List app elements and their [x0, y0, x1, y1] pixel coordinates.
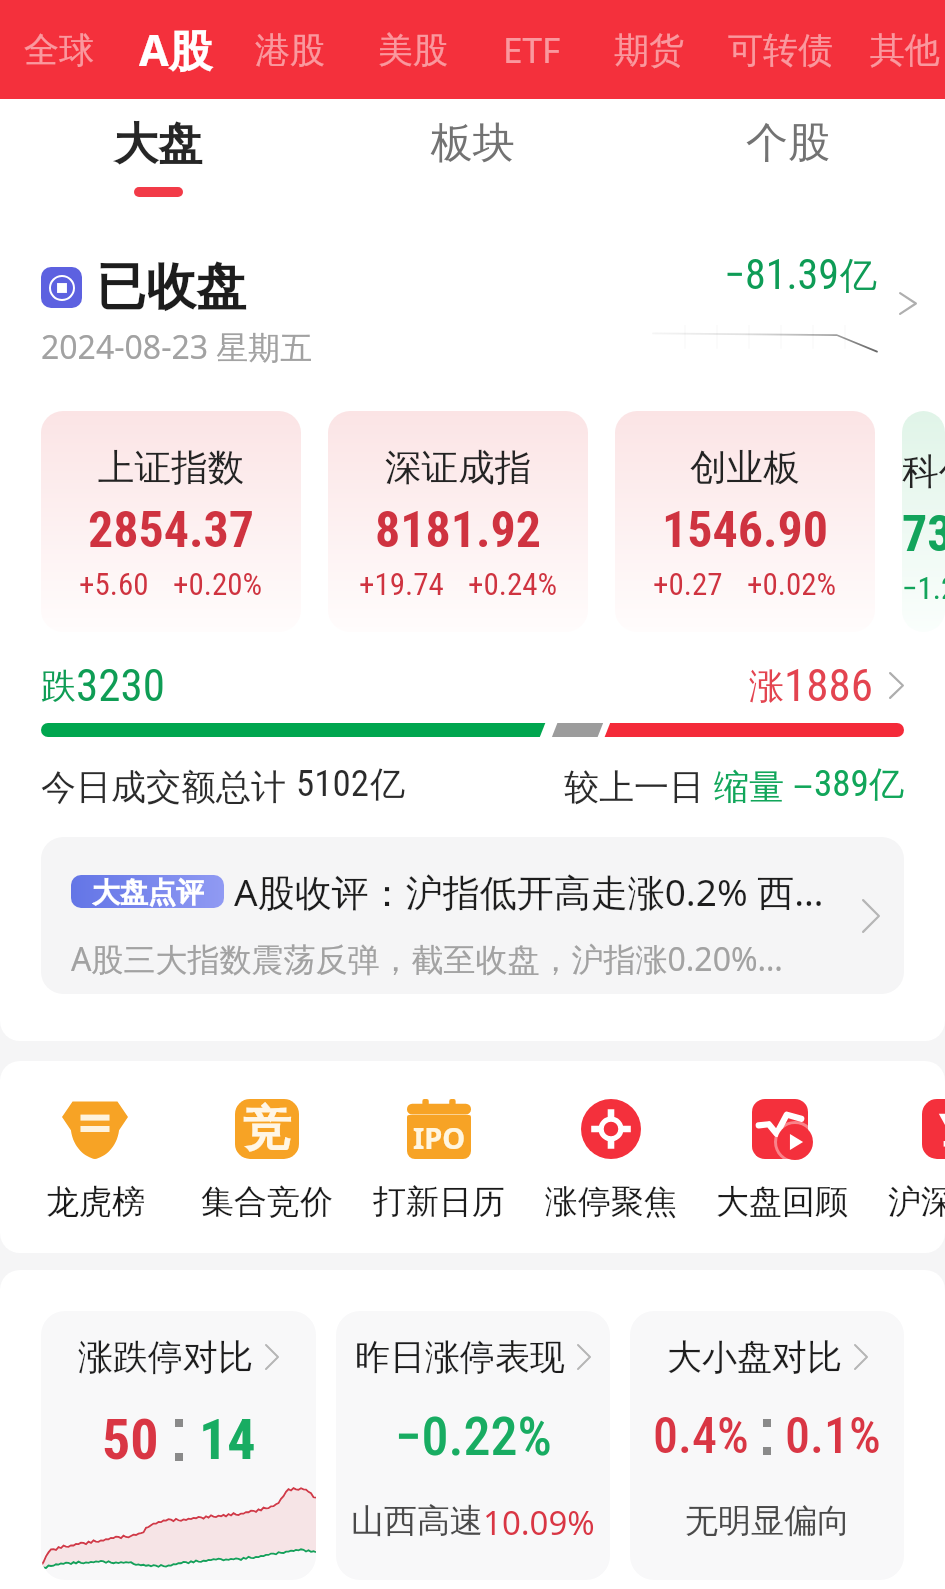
staticText: A股三大指数震荡反弹，截至收盘，沪指涨0.20%…	[71, 937, 783, 981]
button[interactable]: 个股	[630, 117, 945, 217]
button[interactable]: 上证指数	[41, 411, 301, 632]
staticText: 大盘	[114, 117, 202, 172]
button[interactable]: 大小盘对比	[630, 1311, 904, 1580]
button[interactable]: 龙虎榜	[9, 1099, 181, 1223]
staticText: −1.28	[902, 570, 945, 606]
staticText: +0.02%	[747, 566, 837, 602]
staticText: 已收盘	[96, 256, 246, 319]
button[interactable]: 板块	[315, 117, 630, 217]
staticText: 板块	[431, 117, 515, 170]
button[interactable]: 深证成指	[328, 411, 588, 632]
staticText: 创业板	[690, 445, 800, 491]
staticText: −0.22%	[395, 1405, 552, 1468]
staticText: 亿	[869, 762, 904, 806]
other: 涨停聚焦	[578, 1099, 644, 1159]
button[interactable]: 已收盘	[0, 256, 945, 369]
staticText: 5102	[296, 762, 370, 805]
button[interactable]: 期货	[597, 0, 701, 99]
button[interactable]: 涨跌停对比	[41, 1311, 316, 1580]
staticText: 0.4%	[653, 1407, 749, 1466]
button[interactable]: 其他	[853, 0, 945, 99]
button[interactable]: 港股	[238, 0, 342, 99]
staticText: 期货	[614, 28, 684, 72]
staticText: ETF	[503, 26, 561, 74]
button[interactable]: 打新日历	[353, 1099, 525, 1223]
staticText: 涨跌停对比	[78, 1335, 253, 1379]
staticText: +19.74	[359, 566, 444, 602]
staticText: 科创50	[902, 445, 945, 495]
other: 沪深	[922, 1099, 945, 1159]
staticText: IPO	[413, 1118, 466, 1157]
staticText: 深证成指	[385, 445, 532, 491]
staticText: 大盘点评	[92, 875, 204, 908]
button[interactable]: 创业板	[615, 411, 875, 632]
other: 涨跌详情	[889, 672, 904, 699]
button[interactable]: 昨日涨停表现	[336, 1311, 610, 1580]
staticText: +5.60	[79, 566, 149, 602]
staticText: 全球	[24, 28, 94, 72]
staticText: 竞	[243, 1099, 291, 1159]
other: 昨日涨停表现	[577, 1344, 591, 1370]
button[interactable]: 大盘	[0, 117, 315, 217]
staticText: 1886	[784, 659, 873, 712]
button[interactable]: 大盘点评	[41, 837, 904, 994]
button[interactable]: 可转债	[728, 0, 832, 99]
button[interactable]: 大盘回顾	[696, 1099, 868, 1223]
staticText: +0.20%	[173, 566, 263, 602]
staticText: 今日成交额总计	[41, 762, 296, 810]
staticText: 14	[199, 1407, 256, 1473]
staticText: 沪深股通	[888, 1181, 945, 1223]
staticText: 较上一日	[564, 762, 714, 810]
staticText: 10.09%	[483, 1500, 595, 1545]
other: 涨跌停对比	[265, 1344, 279, 1370]
staticText: 港股	[255, 28, 325, 72]
staticText: 缩量 −	[714, 762, 814, 810]
staticText: 无明显偏向	[685, 1500, 850, 1542]
staticText: 上证指数	[98, 445, 245, 491]
staticText: 山西高速	[351, 1500, 483, 1542]
staticText: −81.39	[724, 250, 840, 299]
button[interactable]: 科创50	[902, 411, 945, 632]
staticText: 个股	[746, 117, 830, 170]
staticText: 跌	[41, 664, 76, 708]
staticText: 8181.92	[375, 501, 542, 560]
staticText: 亿	[840, 252, 877, 299]
other: 龙虎榜	[62, 1099, 128, 1159]
staticText: 大小盘对比	[667, 1335, 842, 1379]
staticText: 736.49	[902, 505, 945, 564]
button[interactable]: ETF	[480, 0, 584, 99]
staticText: 涨停聚焦	[545, 1181, 677, 1223]
staticText: 涨	[749, 664, 784, 708]
staticText: +0.27	[653, 566, 723, 602]
staticText: 1546.90	[662, 501, 829, 560]
button[interactable]: 美股	[361, 0, 465, 99]
staticText: 2854.37	[88, 501, 255, 560]
staticText: 龙虎榜	[46, 1181, 145, 1223]
staticText: 0.1%	[785, 1407, 881, 1466]
staticText: 50	[102, 1407, 159, 1473]
other: 竞	[235, 1099, 299, 1159]
other: 详情	[899, 292, 917, 315]
button[interactable]: 沪深	[868, 1099, 945, 1223]
staticText: 集合竞价	[201, 1181, 333, 1223]
staticText: 打新日历	[373, 1181, 505, 1223]
other: 大小盘对比	[854, 1344, 868, 1370]
other: 打新日历	[407, 1099, 471, 1159]
other: 查看新闻	[862, 899, 880, 933]
button[interactable]: 全球	[7, 0, 111, 99]
staticText: 大盘回顾	[716, 1181, 848, 1223]
staticText: 389	[814, 762, 869, 805]
staticText: A股	[139, 20, 212, 79]
staticText: 亿	[370, 762, 405, 806]
other: 大盘回顾	[752, 1099, 812, 1159]
staticText: 2024-08-23 星期五	[41, 325, 313, 369]
staticText: 昨日涨停表现	[355, 1335, 565, 1379]
staticText: +0.24%	[468, 566, 558, 602]
button[interactable]: A股	[123, 0, 227, 99]
button[interactable]: 竞	[181, 1099, 353, 1223]
staticText: A股收评：沪指低开高走涨0.2% 西…	[234, 866, 824, 917]
staticText: 其他	[870, 28, 940, 72]
staticText: 可转债	[728, 28, 832, 72]
staticText: 3230	[76, 659, 165, 712]
button[interactable]: 涨停聚焦	[525, 1099, 697, 1223]
